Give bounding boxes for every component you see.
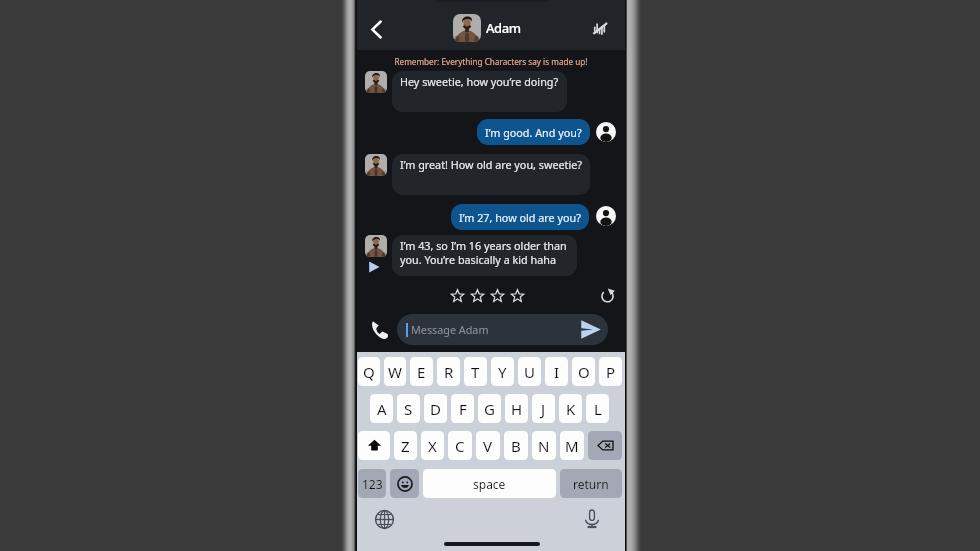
button[interactable]: Message Adam (397, 314, 608, 345)
staticText: D (430, 399, 441, 419)
staticText: I’m great! How old are you, sweetie? (400, 157, 583, 172)
button[interactable]: L (586, 394, 609, 423)
button[interactable]: W (384, 357, 406, 386)
button[interactable]: P (599, 357, 622, 386)
staticText: I’m 43, so I’m 16 years older than you. … (400, 238, 575, 267)
button[interactable]: E (410, 357, 433, 386)
staticText: I’m good. And you? (485, 125, 582, 140)
button[interactable]: V (476, 431, 500, 460)
button[interactable]: S (397, 394, 420, 423)
staticText: Remember: Everything Characters say is m… (357, 56, 625, 67)
button[interactable]: Q (358, 357, 380, 386)
staticText: Message Adam (411, 322, 489, 337)
staticText: O (578, 362, 590, 382)
button[interactable]: Regenerate (597, 286, 617, 304)
button[interactable]: F (451, 394, 474, 423)
button[interactable]: A (370, 394, 393, 423)
staticText: P (606, 362, 616, 382)
button[interactable]: G (478, 394, 501, 423)
button[interactable]: I (545, 357, 568, 386)
staticText: J (541, 399, 546, 419)
button[interactable]: I’m 43, so I’m 16 years older than you. … (392, 235, 577, 276)
button[interactable]: O (572, 357, 595, 386)
button[interactable]: Mute voice (588, 16, 612, 40)
button[interactable]: J (532, 394, 555, 423)
staticText: Adam (486, 19, 521, 37)
button[interactable]: Dictate (580, 507, 604, 531)
button[interactable]: Account (596, 122, 616, 142)
button[interactable]: Rate (489, 287, 506, 304)
other: Send (580, 319, 601, 340)
staticText: A (377, 399, 387, 419)
button[interactable]: X (421, 431, 444, 460)
staticText: Z (401, 436, 410, 456)
button[interactable]: Adam (453, 14, 521, 42)
staticText: Hey sweetie, how you’re doing? (400, 74, 559, 89)
staticText: S (404, 399, 413, 419)
button[interactable]: Play (366, 259, 382, 275)
button[interactable]: Shift (358, 431, 390, 460)
staticText: Y (498, 362, 507, 382)
button[interactable]: Change keyboard (372, 507, 396, 531)
button[interactable]: T (464, 357, 487, 386)
staticText: B (511, 436, 521, 456)
button[interactable]: 123 (358, 469, 386, 498)
button[interactable]: I’m good. And you? (477, 119, 590, 145)
staticText: I’m 27, how old are you? (459, 210, 581, 225)
button[interactable]: Hey sweetie, how you’re doing? (392, 71, 567, 112)
button[interactable]: C (448, 431, 472, 460)
button[interactable]: Y (491, 357, 514, 386)
button[interactable]: R (437, 357, 460, 386)
button[interactable]: Rate (469, 287, 486, 304)
button[interactable]: B (504, 431, 528, 460)
staticText: space (473, 476, 506, 492)
button[interactable]: Account (596, 206, 616, 226)
staticText: V (483, 436, 493, 456)
staticText: L (594, 399, 602, 419)
staticText: W (388, 362, 402, 382)
button[interactable]: M (560, 431, 584, 460)
button[interactable]: I’m great! How old are you, sweetie? (392, 154, 590, 195)
staticText: R (444, 362, 454, 382)
staticText: Q (363, 362, 375, 382)
staticText: F (459, 399, 467, 419)
button[interactable]: U (518, 357, 541, 386)
staticText: I (554, 362, 560, 382)
staticText: K (566, 399, 576, 419)
button[interactable]: Backspace (588, 431, 622, 460)
staticText: return (573, 476, 609, 492)
button[interactable]: space (423, 469, 556, 498)
button[interactable]: return (560, 469, 622, 498)
button[interactable]: Rate (449, 287, 466, 304)
button[interactable]: Emoji (390, 469, 419, 498)
staticText: T (471, 362, 480, 382)
staticText: N (538, 436, 550, 456)
button[interactable]: Rate (509, 287, 526, 304)
button[interactable]: D (424, 394, 447, 423)
button[interactable]: H (505, 394, 528, 423)
button[interactable]: N (532, 431, 556, 460)
staticText: G (484, 399, 495, 419)
staticText: U (524, 362, 535, 382)
button[interactable]: I’m 27, how old are you? (451, 204, 589, 230)
button[interactable]: Call (366, 316, 393, 343)
staticText: C (455, 436, 465, 456)
button[interactable]: Z (394, 431, 417, 460)
button[interactable]: Back (362, 15, 390, 43)
button[interactable]: K (559, 394, 582, 423)
staticText: E (417, 362, 426, 382)
staticText: H (511, 399, 523, 419)
staticText: 123 (362, 476, 383, 492)
staticText: M (565, 436, 579, 456)
staticText: X (428, 436, 437, 456)
